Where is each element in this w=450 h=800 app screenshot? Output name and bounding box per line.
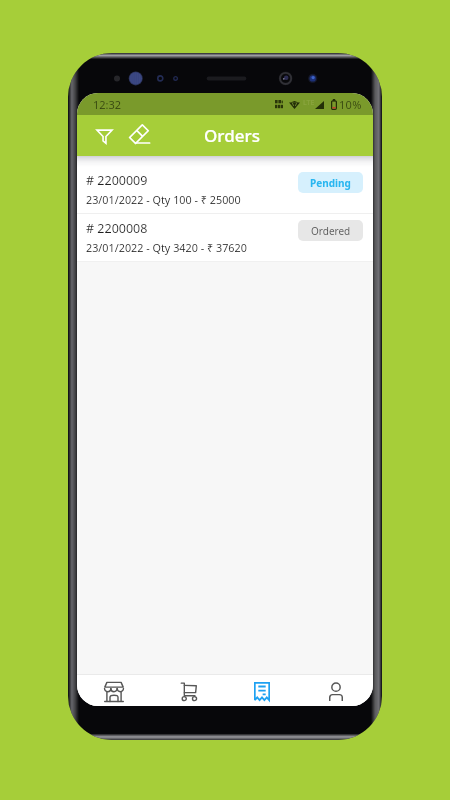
staticText: 23/01/2022 - Qty 3420 - ₹ 37620 — [86, 240, 247, 255]
staticText: 23/01/2022 - Qty 100 - ₹ 25000 — [86, 192, 241, 207]
staticText: # 2200008 — [86, 220, 148, 237]
staticText: 12:32 — [93, 97, 122, 112]
staticText: Ordered — [311, 224, 351, 238]
button[interactable]: Ordered — [298, 220, 363, 241]
staticText: 10% — [339, 97, 362, 112]
button[interactable]: Orders — [225, 675, 299, 706]
button[interactable]: # 2200009 — [77, 166, 373, 213]
staticText: Pending — [310, 176, 351, 190]
staticText: Orders — [204, 124, 260, 147]
staticText: LTE — [303, 98, 315, 108]
button[interactable]: Store — [77, 675, 151, 706]
staticText: # 2200009 — [86, 172, 148, 189]
button[interactable]: Filter orders — [88, 117, 121, 155]
button[interactable]: Cart — [151, 675, 225, 706]
button[interactable]: Clear filters — [123, 117, 156, 155]
button[interactable]: Profile — [299, 675, 373, 706]
button[interactable]: # 2200008 — [77, 214, 373, 261]
button[interactable]: Pending — [298, 172, 363, 193]
